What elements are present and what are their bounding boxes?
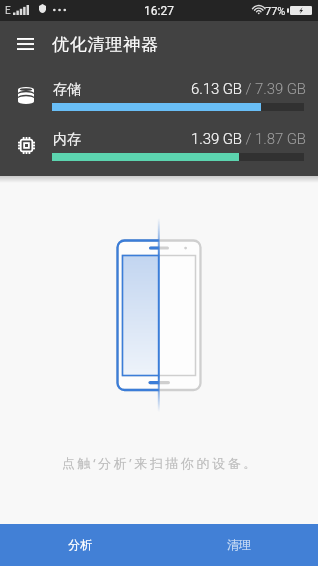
staticText: 16:27 [144, 4, 174, 18]
staticText: 分析 [68, 537, 92, 552]
staticText: 6.13 GB [191, 80, 242, 98]
button[interactable]: 内存 [0, 128, 318, 168]
button[interactable]: Menu [0, 21, 50, 67]
staticText: / 7.39 GB [242, 80, 306, 98]
staticText: 点触‘分析’来扫描你的设备。 [62, 454, 259, 472]
staticText: 77% [265, 5, 286, 18]
staticText: 存储 [53, 81, 81, 99]
staticText: 内存 [53, 131, 81, 149]
staticText: E [5, 5, 11, 17]
button[interactable]: 清理 [159, 524, 318, 566]
staticText: 1.39 GB [191, 130, 242, 148]
button[interactable]: 存储 [0, 78, 318, 118]
staticText: 清理 [227, 537, 251, 552]
staticText: / 1.87 GB [242, 130, 306, 148]
button[interactable]: 分析 [0, 524, 159, 566]
staticText: 优化清理神器 [52, 34, 159, 55]
